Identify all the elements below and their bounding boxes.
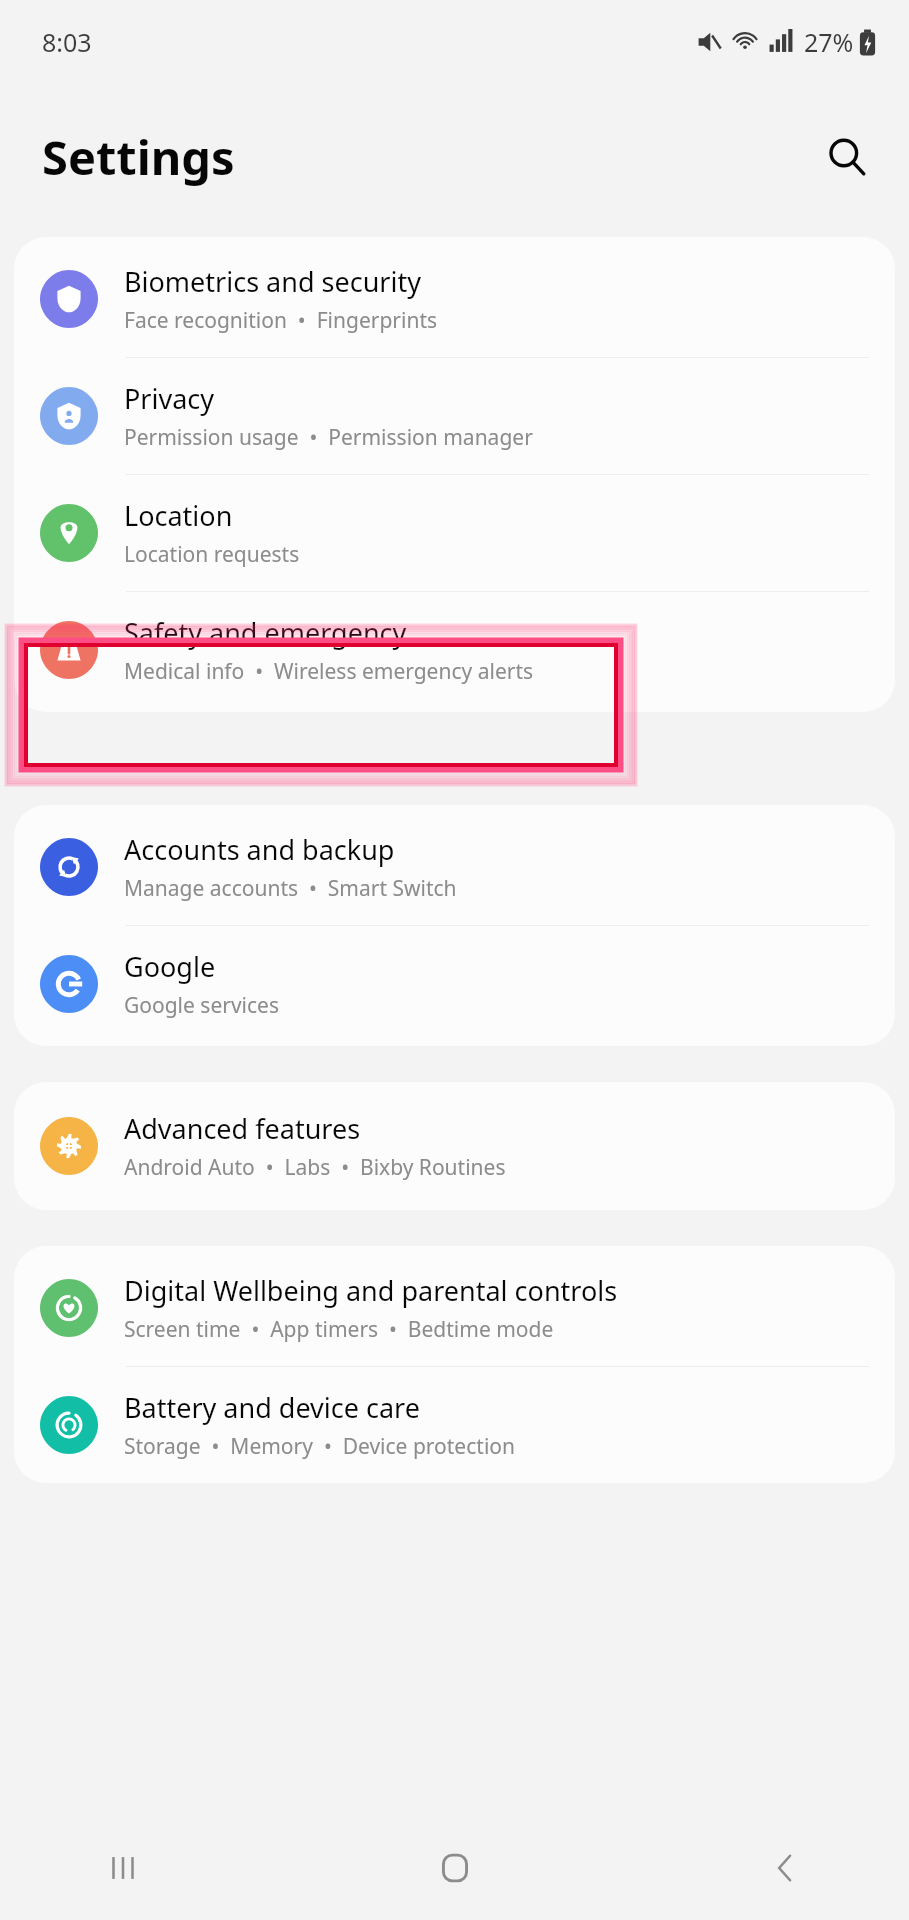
staticText: Google services	[124, 991, 279, 1020]
button[interactable]: Advanced features	[14, 1082, 895, 1210]
staticText: Android Auto • Labs • Bixby Routines	[124, 1153, 506, 1182]
staticText: Biometrics and security	[124, 263, 421, 300]
staticText: Digital Wellbeing and parental controls	[124, 1272, 618, 1309]
button[interactable]: Digital Wellbeing and parental controls	[14, 1246, 895, 1367]
staticText: Battery and device care	[124, 1389, 420, 1426]
button[interactable]: Biometrics and security	[14, 237, 895, 358]
button[interactable]: Google	[14, 926, 895, 1046]
staticText: Manage accounts • Smart Switch	[124, 874, 457, 903]
staticText: Advanced features	[124, 1110, 361, 1147]
staticText: Privacy	[124, 380, 215, 417]
staticText: 27%	[804, 25, 854, 59]
staticText: Location	[124, 497, 233, 534]
staticText: Accounts and backup	[124, 831, 395, 868]
button[interactable]: Home	[420, 1833, 490, 1903]
staticText: 8:03	[42, 25, 92, 59]
staticText: Safety and emergency	[124, 614, 407, 651]
staticText: Location requests	[124, 540, 300, 569]
staticText: Face recognition • Fingerprints	[124, 306, 438, 335]
staticText: Storage • Memory • Device protection	[124, 1432, 515, 1461]
staticText: Permission usage • Permission manager	[124, 423, 533, 452]
staticText: Medical info • Wireless emergency alerts	[124, 657, 534, 686]
button[interactable]: Search	[815, 125, 879, 189]
staticText: Settings	[42, 125, 235, 189]
button[interactable]: Safety and emergency	[14, 592, 895, 712]
button[interactable]: Location	[14, 475, 895, 592]
button[interactable]: Back	[751, 1833, 821, 1903]
button[interactable]: Battery and device care	[14, 1367, 895, 1483]
button[interactable]: Accounts and backup	[14, 805, 895, 926]
button[interactable]: Recent apps	[88, 1833, 158, 1903]
staticText: Screen time • App timers • Bedtime mode	[124, 1315, 554, 1344]
button[interactable]: Privacy	[14, 358, 895, 475]
staticText: Google	[124, 948, 216, 985]
